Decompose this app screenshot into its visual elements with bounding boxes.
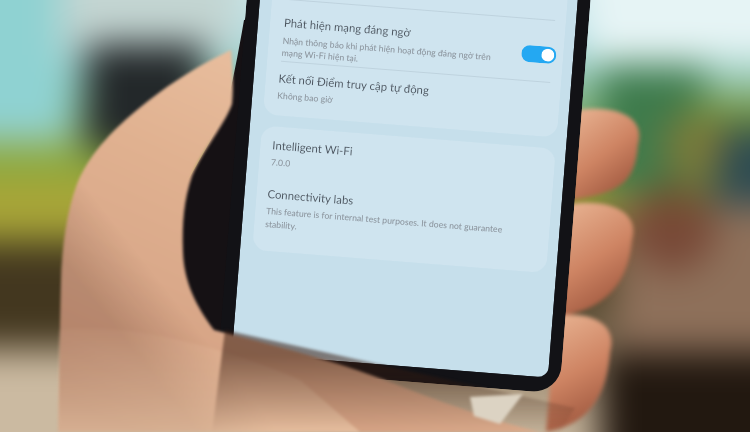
button[interactable]: Intelligent Wi-Fi [258, 129, 556, 200]
button[interactable]: Connectivity labs [253, 178, 552, 261]
button[interactable]: Suspicious network detection toggle [521, 45, 557, 64]
staticText: Intelligent Wi-Fi [272, 138, 354, 158]
staticText: Phát hiện mạng đáng ngờ [283, 16, 411, 40]
staticText: Nhận thông báo khi phát hiện hoạt động đ… [281, 35, 498, 75]
staticText: 7.0.0 [271, 156, 291, 168]
staticText: Connectivity labs [267, 187, 354, 208]
button[interactable]: Phát hiện mạng đáng ngờ [267, 5, 566, 86]
staticText: Kết nối Điểm truy cập tự động [278, 71, 430, 97]
button[interactable]: Kết nối Điểm truy cập tự động [263, 62, 561, 136]
staticText: This feature is for internal test purpos… [265, 205, 511, 248]
staticText: Không bao giờ [277, 89, 334, 104]
